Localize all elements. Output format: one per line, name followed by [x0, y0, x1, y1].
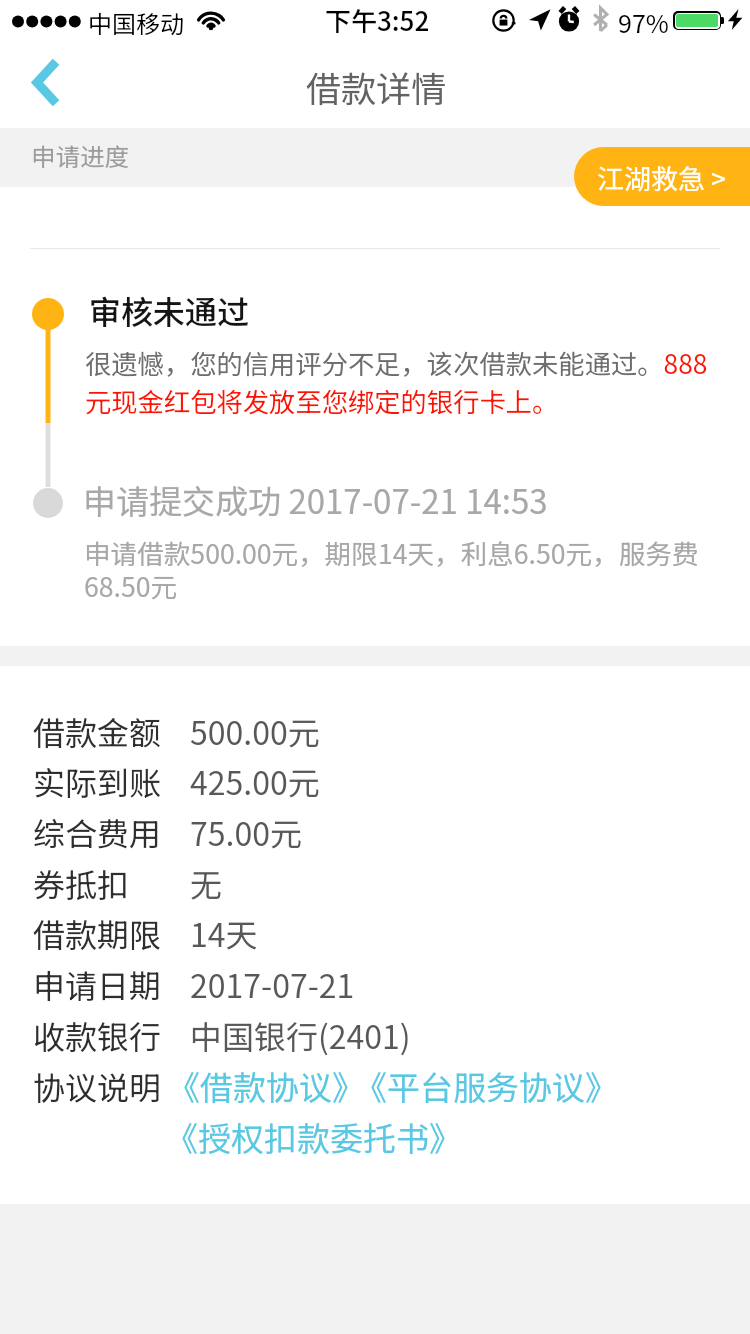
- staticText: 《授权扣款委托书》: [165, 1113, 462, 1161]
- staticText: 综合费用: [33, 809, 162, 855]
- staticText: 收款银行: [33, 1012, 162, 1058]
- staticText: 实际到账: [33, 758, 162, 804]
- button[interactable]: 《借款协议》: [167, 1062, 365, 1110]
- staticText: 无: [190, 860, 223, 906]
- staticText: 申请日期: [33, 961, 162, 1007]
- staticText: 下午3:52: [325, 1, 430, 39]
- staticText: 协议说明: [33, 1063, 162, 1109]
- staticText: 425.00元: [190, 758, 320, 804]
- staticText: 14天: [190, 910, 258, 956]
- button[interactable]: 江湖救急 >: [574, 147, 750, 206]
- button[interactable]: 《授权扣款委托书》: [165, 1113, 462, 1161]
- button[interactable]: Back: [4, 40, 90, 128]
- staticText: 申请借款500.00元，期限14天，利息6.50元，服务费68.50元: [84, 538, 718, 604]
- staticText: 97%: [618, 4, 669, 40]
- button[interactable]: 《平台服务协议》: [354, 1062, 618, 1110]
- staticText: 借款详情: [306, 61, 447, 112]
- staticText: 借款金额: [33, 708, 162, 754]
- staticText: 75.00元: [190, 809, 302, 855]
- staticText: 《借款协议》: [167, 1062, 365, 1110]
- staticText: 申请进度: [31, 138, 129, 173]
- staticText: 《平台服务协议》: [354, 1062, 618, 1110]
- staticText: 借款期限: [33, 910, 162, 956]
- staticText: 江湖救急 >: [597, 158, 727, 197]
- staticText: 中国银行(2401): [190, 1012, 411, 1058]
- staticText: 券抵扣: [33, 860, 130, 906]
- staticText: 很遗憾，您的信用评分不足，该次借款未能通过。888元现金红包将发放至您绑定的银行…: [85, 344, 719, 420]
- staticText: 申请提交成功 2017-07-21 14:53: [83, 476, 548, 524]
- staticText: 500.00元: [190, 708, 320, 754]
- staticText: 2017-07-21: [190, 961, 355, 1007]
- staticText: 审核未通过: [89, 287, 250, 333]
- staticText: 中国移动: [88, 5, 184, 40]
